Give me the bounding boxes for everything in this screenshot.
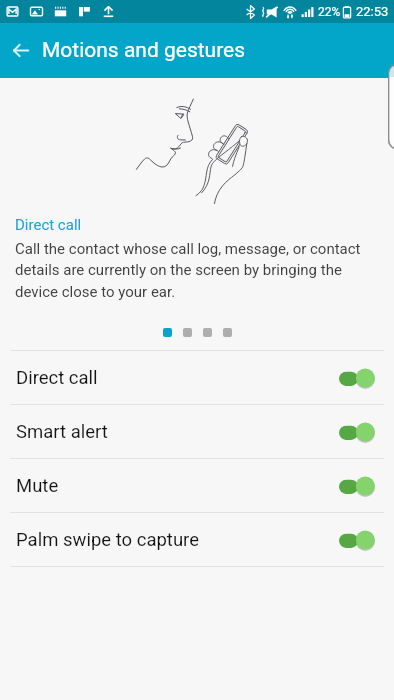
button[interactable]: Toggle on <box>339 529 375 551</box>
button[interactable]: Page 3 <box>203 328 212 337</box>
button[interactable]: Back <box>0 23 42 78</box>
button[interactable]: Smart alert <box>0 405 394 458</box>
staticText: Palm swipe to capture <box>16 529 199 551</box>
button[interactable]: Toggle on <box>339 367 375 389</box>
button[interactable]: Palm swipe to capture <box>0 513 394 566</box>
staticText: Smart alert <box>16 421 108 443</box>
button[interactable]: Direct call <box>0 351 394 404</box>
staticText: 22:53 <box>356 4 389 19</box>
staticText: Call the contact whose call log, message… <box>15 240 380 301</box>
button[interactable]: Page 2 <box>183 328 192 337</box>
staticText: 22% <box>318 5 341 19</box>
staticText: Direct call <box>16 367 98 389</box>
button[interactable]: Toggle on <box>339 421 375 443</box>
staticText: Mute <box>16 475 59 497</box>
button[interactable]: Mute <box>0 459 394 512</box>
button[interactable]: Page 4 <box>223 328 232 337</box>
staticText: Motions and gestures <box>42 38 246 63</box>
button[interactable]: Page 1 <box>163 328 172 337</box>
staticText: Direct call <box>15 216 82 234</box>
button[interactable]: Toggle on <box>339 475 375 497</box>
